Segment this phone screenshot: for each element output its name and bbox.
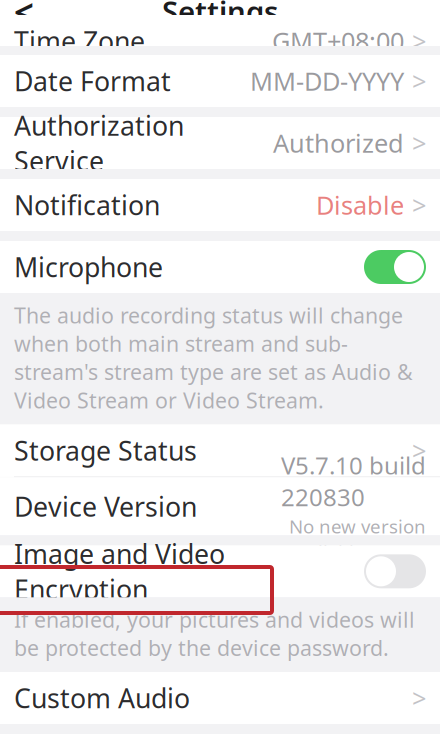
button[interactable]: Time Zone bbox=[0, 15, 440, 67]
staticText: > bbox=[412, 433, 426, 467]
staticText: V5.7.10 build 220830 bbox=[281, 449, 426, 513]
staticText: The audio recording status will change w… bbox=[14, 301, 413, 414]
staticText: > bbox=[412, 24, 426, 58]
staticText: If enabled, your pictures and videos wil… bbox=[14, 605, 415, 662]
staticText: Settings bbox=[162, 0, 278, 30]
staticText: > bbox=[412, 64, 426, 98]
staticText: Custom Audio bbox=[14, 680, 190, 716]
button[interactable]: Authorization Service bbox=[0, 117, 440, 169]
staticText: Notification bbox=[14, 187, 160, 223]
button[interactable]: Storage Status bbox=[0, 424, 440, 476]
button[interactable]: Notification bbox=[0, 179, 440, 231]
staticText: Device Version bbox=[14, 489, 197, 524]
staticText: Storage Status bbox=[14, 433, 197, 468]
staticText: No new version available. bbox=[289, 514, 426, 563]
staticText: Time Zone bbox=[14, 23, 145, 59]
staticText: Microphone bbox=[14, 249, 163, 285]
button[interactable]: Custom Audio bbox=[0, 672, 440, 724]
button[interactable]: Date Format bbox=[0, 55, 440, 107]
staticText: > bbox=[412, 126, 426, 160]
button[interactable]: Device Version bbox=[0, 477, 440, 535]
button[interactable]: Image and Video Encryption bbox=[0, 545, 440, 597]
staticText: Authorization Service bbox=[14, 108, 184, 178]
staticText: > bbox=[412, 188, 426, 222]
staticText: < bbox=[14, 0, 34, 34]
staticText: Image and Video Encryption bbox=[14, 536, 225, 607]
button[interactable]: Microphone bbox=[0, 241, 440, 293]
staticText: Authorized bbox=[273, 126, 404, 160]
staticText: MM-DD-YYYY bbox=[250, 64, 404, 98]
staticText: > bbox=[412, 681, 426, 715]
staticText: Disable bbox=[316, 188, 404, 222]
staticText: Date Format bbox=[14, 63, 171, 99]
staticText: GMT+08:00 bbox=[272, 24, 404, 58]
button[interactable]: Back bbox=[0, 0, 48, 33]
